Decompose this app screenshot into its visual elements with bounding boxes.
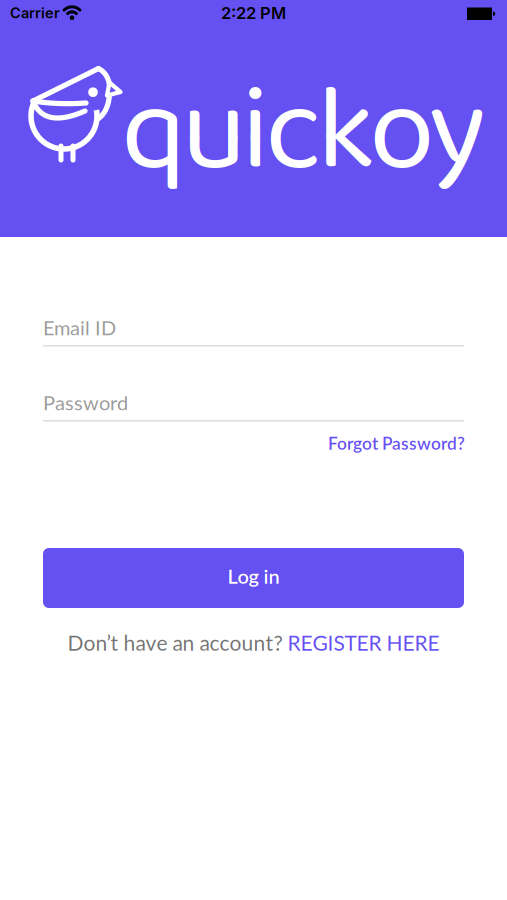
staticText: Log in: [227, 564, 279, 588]
button[interactable]: Email ID: [43, 315, 464, 346]
staticText: Email ID: [43, 315, 116, 339]
button[interactable]: Don’t have an account?: [67, 630, 439, 655]
staticText: REGISTER HERE: [287, 630, 439, 655]
button[interactable]: Log in: [43, 548, 464, 608]
button[interactable]: Forgot Password?: [328, 433, 465, 453]
staticText: 2:22 PM: [221, 3, 286, 23]
button[interactable]: Password: [43, 390, 464, 421]
staticText: Carrier: [10, 4, 60, 22]
staticText: quickoy: [121, 38, 486, 228]
staticText: Don’t have an account?: [67, 630, 287, 655]
staticText: Forgot Password?: [328, 433, 465, 453]
staticText: Password: [43, 390, 128, 414]
